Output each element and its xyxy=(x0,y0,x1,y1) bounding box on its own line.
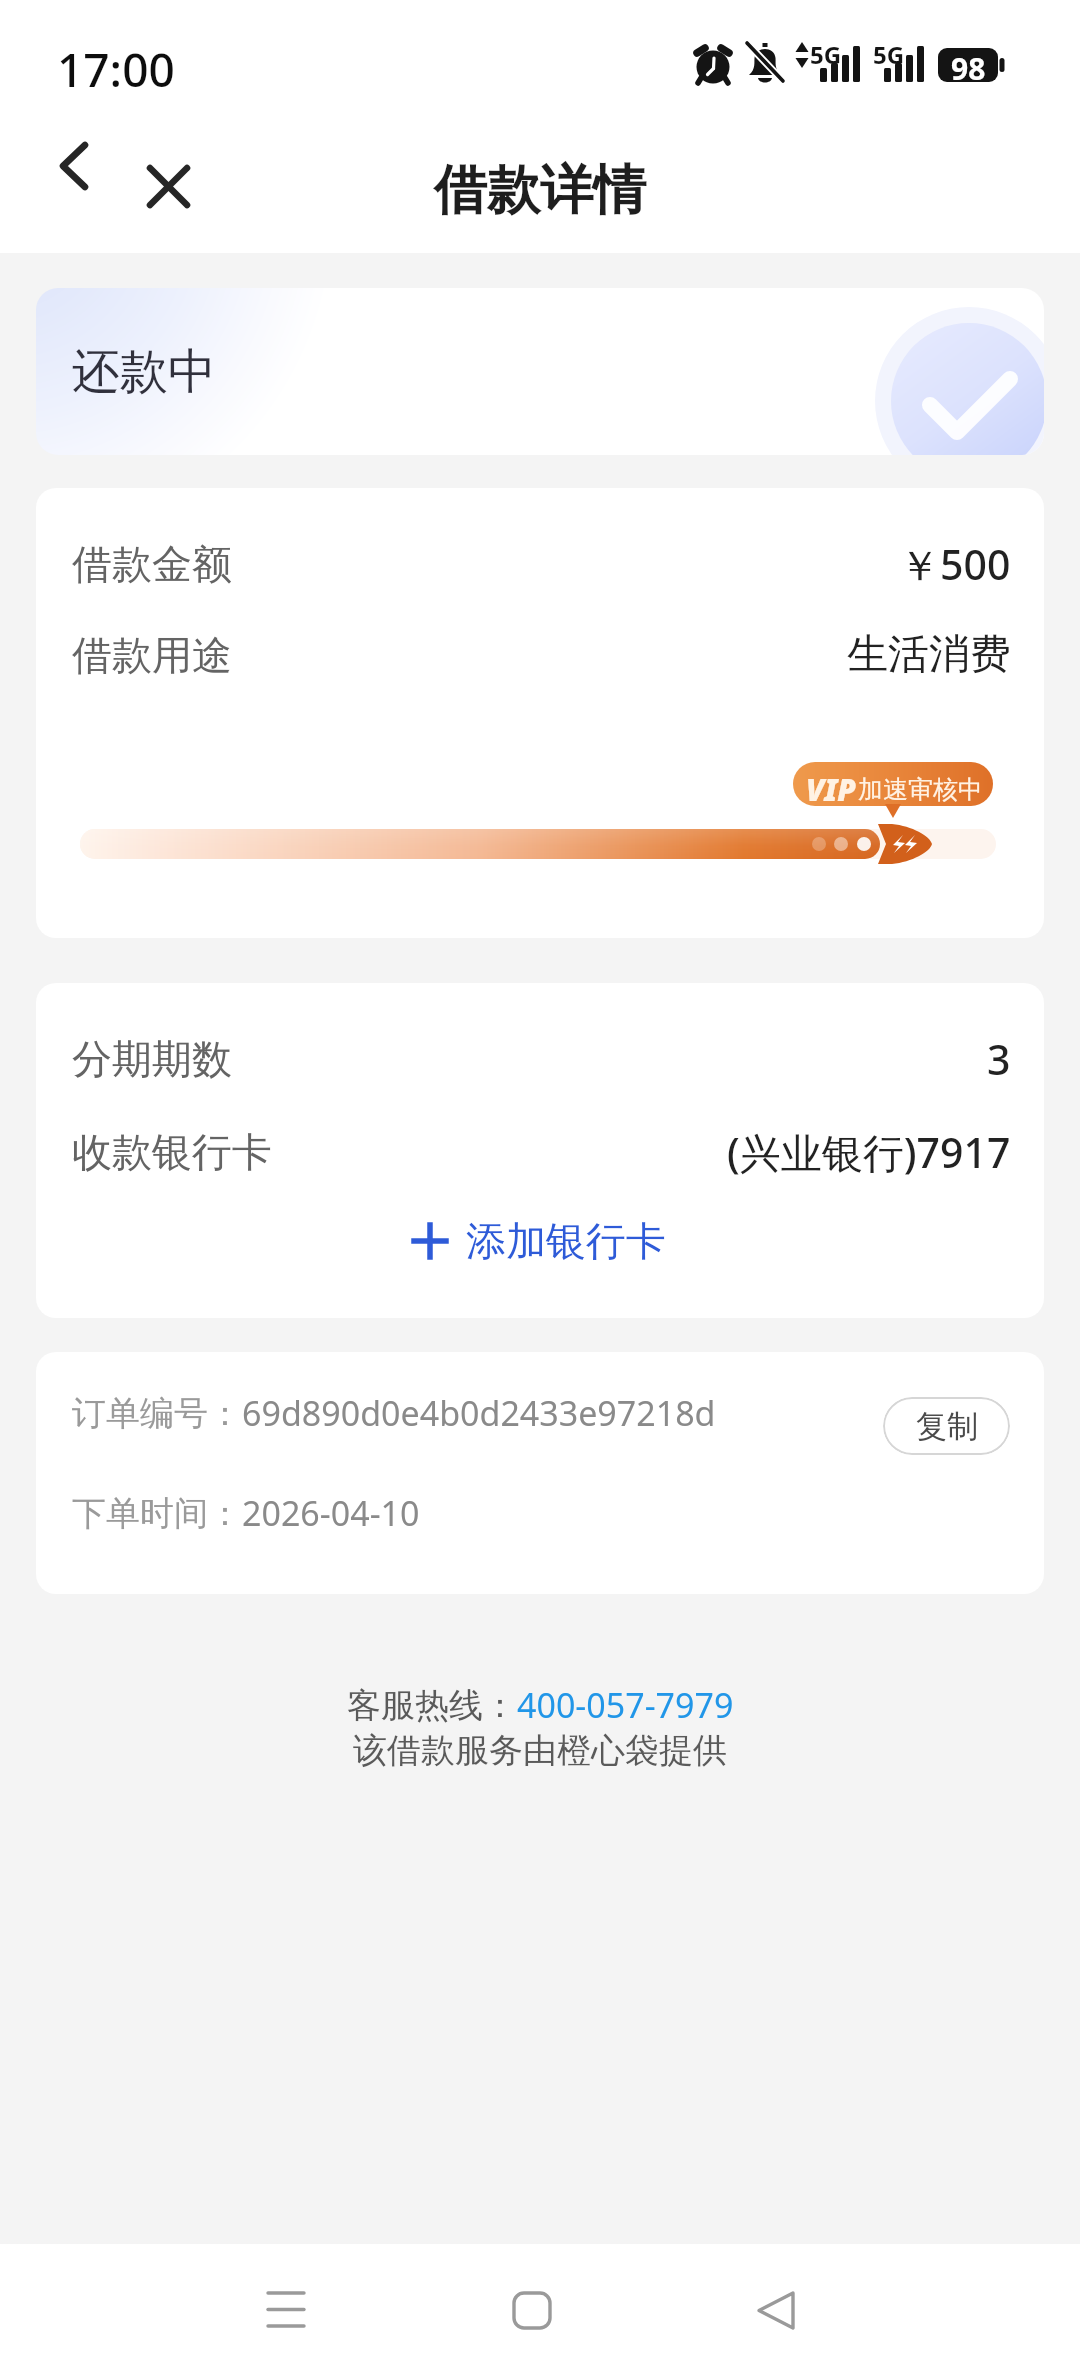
staticText: 还款中 xyxy=(72,342,216,402)
button[interactable]: 复制 xyxy=(883,1397,1010,1455)
staticText: 17:00 xyxy=(57,38,175,101)
button[interactable]: 客服热线： xyxy=(347,1682,734,1728)
staticText: 下单时间： xyxy=(72,1492,242,1535)
staticText: 客服热线： xyxy=(347,1684,517,1727)
staticText: 借款用途 xyxy=(72,630,232,680)
staticText: 订单编号： xyxy=(72,1392,242,1435)
button[interactable]: 还款中 xyxy=(36,288,1044,455)
button[interactable]: Back xyxy=(723,2258,831,2366)
staticText: ￥500 xyxy=(899,536,1011,592)
staticText: VIP xyxy=(806,769,856,810)
button[interactable]: Recent apps xyxy=(232,2257,340,2365)
staticText: 复制 xyxy=(916,1407,978,1446)
staticText: 69d890d0e4b0d2433e97218d xyxy=(242,1390,716,1436)
staticText: 收款银行卡 xyxy=(72,1127,272,1177)
staticText: 5G xyxy=(810,38,842,71)
staticText: 生活消费 xyxy=(847,629,1011,681)
staticText: 400-057-7979 xyxy=(517,1682,734,1728)
staticText: 98 xyxy=(951,48,986,82)
staticText: 借款金额 xyxy=(72,539,232,589)
staticText: 借款详情 xyxy=(434,157,646,224)
staticText: 该借款服务由橙心袋提供 xyxy=(353,1729,727,1772)
staticText: (兴业银行)7917 xyxy=(727,1124,1011,1180)
staticText: 加速审核中 xyxy=(858,774,983,805)
staticText: 添加银行卡 xyxy=(466,1216,666,1266)
button[interactable]: Home xyxy=(478,2258,586,2366)
staticText: 3 xyxy=(987,1031,1011,1087)
button[interactable]: 添加银行卡 xyxy=(36,1196,1044,1286)
staticText: 分期期数 xyxy=(72,1034,232,1084)
button[interactable]: Close xyxy=(120,130,216,226)
staticText: 2026-04-10 xyxy=(242,1490,420,1536)
button[interactable]: Back xyxy=(26,130,122,226)
staticText: 5G xyxy=(873,38,905,71)
